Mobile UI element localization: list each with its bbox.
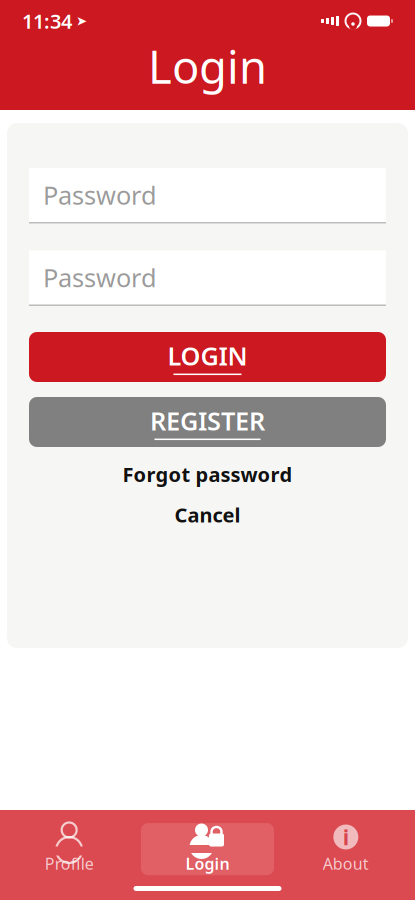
button[interactable]: LOGIN	[29, 332, 386, 382]
staticText: Login	[148, 36, 267, 96]
staticText: LOGIN	[167, 339, 247, 372]
button[interactable]: Login	[141, 823, 274, 875]
button[interactable]: Forgot password	[7, 457, 408, 492]
staticText: i	[343, 823, 349, 851]
button[interactable]: i	[277, 818, 415, 880]
staticText: Password	[43, 261, 157, 294]
staticText: Cancel	[174, 502, 240, 528]
staticText: About	[323, 853, 369, 874]
staticText: Password	[43, 178, 157, 212]
button[interactable]: REGISTER	[29, 397, 386, 447]
staticText: Forgot password	[122, 461, 292, 488]
staticText: ➤	[72, 13, 87, 28]
staticText: 11:34	[22, 8, 72, 34]
staticText: Profile	[45, 853, 94, 874]
button[interactable]: Profile	[0, 818, 138, 880]
staticText: REGISTER	[150, 404, 265, 437]
staticText: Login	[185, 853, 229, 874]
button[interactable]: Cancel	[7, 498, 408, 532]
